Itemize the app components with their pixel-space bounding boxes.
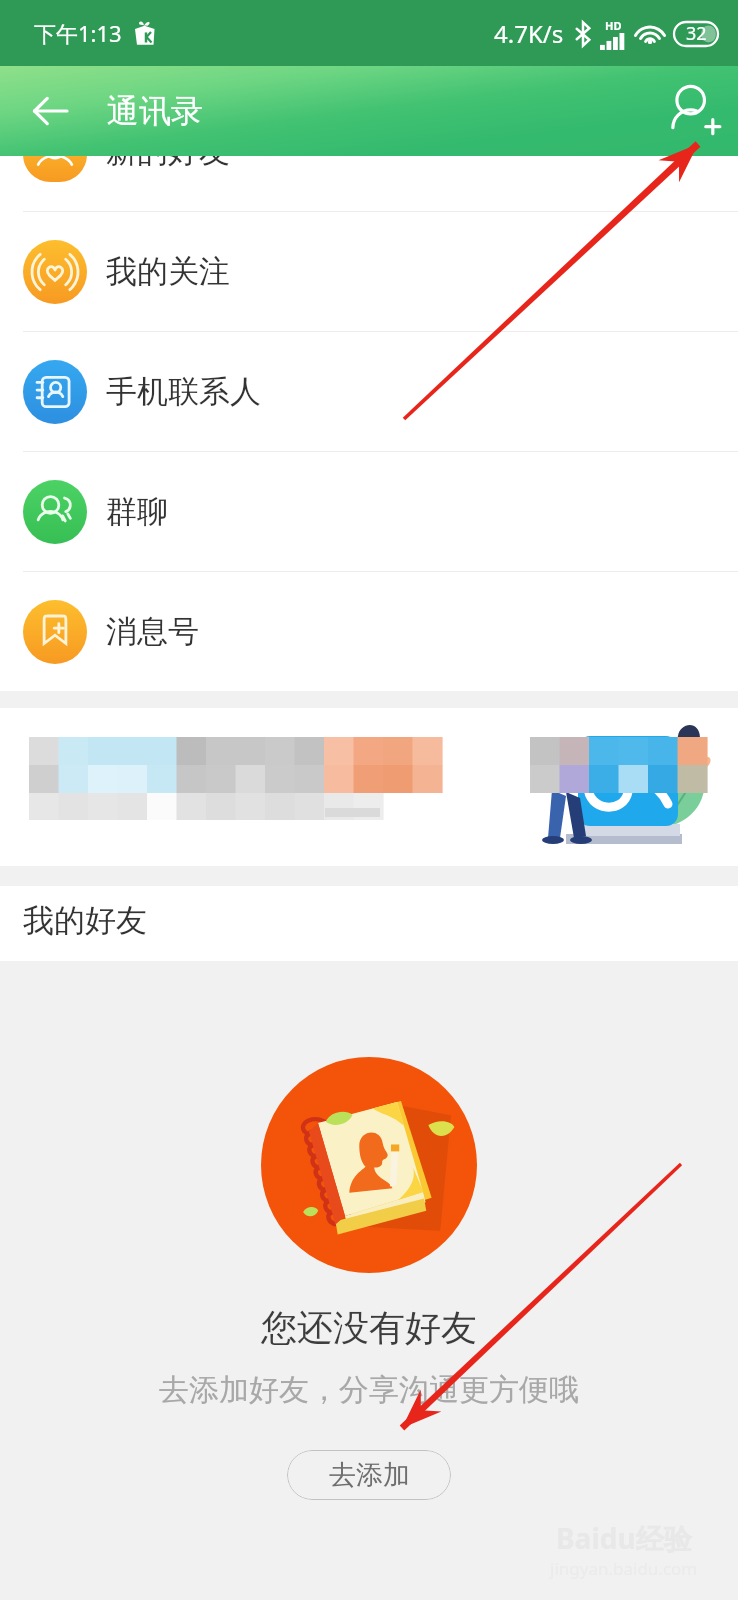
staticText: HD xyxy=(605,18,622,33)
button[interactable]: Add contact xyxy=(652,68,738,154)
staticText: 您还没有好友 xyxy=(261,1305,477,1350)
staticText: 通讯录 xyxy=(107,91,203,131)
staticText: 群聊 xyxy=(106,492,168,531)
staticText: 手机联系人 xyxy=(106,372,261,411)
button[interactable]: 手机联系人 xyxy=(0,332,738,451)
staticText: 我的关注 xyxy=(106,252,230,291)
staticText: 新的好友 xyxy=(106,156,230,171)
button[interactable]: 去添加 xyxy=(287,1450,451,1500)
staticText: 我的好友 xyxy=(23,901,147,940)
staticText: 消息号 xyxy=(106,612,199,651)
button[interactable]: 群聊 xyxy=(0,452,738,571)
staticText: 去添加 xyxy=(329,1458,410,1492)
button[interactable] xyxy=(0,708,738,866)
staticText: 4.7K/s xyxy=(494,17,564,50)
staticText: 32 xyxy=(686,21,707,46)
staticText: 去添加好友，分享沟通更方便哦 xyxy=(159,1371,579,1409)
button[interactable]: 我的关注 xyxy=(0,212,738,331)
staticText: Baidu经验 xyxy=(556,1519,692,1557)
staticText: 下午1:13 xyxy=(34,18,122,48)
button[interactable]: 新的好友 xyxy=(0,156,738,211)
button[interactable]: 消息号 xyxy=(0,572,738,691)
button[interactable]: Back xyxy=(12,73,88,149)
